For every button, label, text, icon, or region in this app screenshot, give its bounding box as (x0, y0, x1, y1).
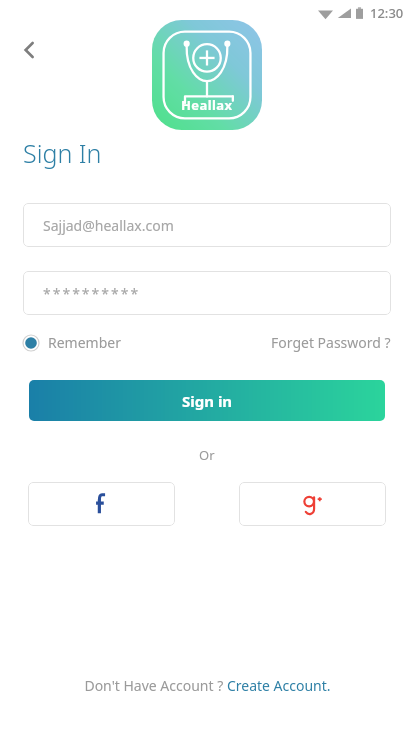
staticText: Sajjad@heallax.com (43, 216, 174, 235)
button[interactable]: Don't Have Account ? Create Account. (84, 676, 331, 695)
button[interactable]: Back (10, 30, 50, 70)
button[interactable]: Sign in with Google (239, 482, 386, 526)
button[interactable]: ********** (23, 271, 391, 315)
button[interactable]: Forget Password ? (271, 333, 391, 352)
staticText: 12:30 (370, 4, 404, 22)
staticText: ********** (43, 284, 141, 303)
button[interactable]: Sajjad@heallax.com (23, 203, 391, 247)
staticText: Remember (48, 333, 121, 352)
staticText: Sign In (23, 136, 102, 170)
staticText: Heallax (181, 96, 233, 114)
staticText: Don't Have Account ? Create Account. (84, 676, 331, 695)
button[interactable]: Sign in with Facebook (28, 482, 175, 526)
staticText: Or (199, 446, 215, 464)
other: Heallax logo (152, 20, 262, 130)
button[interactable]: Remember (23, 333, 127, 352)
staticText: Sign in (182, 391, 233, 411)
staticText: Forget Password ? (271, 333, 391, 352)
button[interactable]: Sign in (29, 380, 385, 421)
